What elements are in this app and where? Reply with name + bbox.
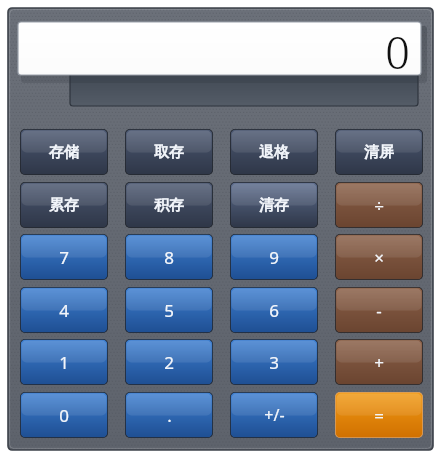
button[interactable]: 累存 [20,182,108,228]
staticText: 2 [164,351,174,374]
button[interactable]: 5 [125,287,213,333]
button[interactable]: 退格 [230,129,318,175]
staticText: . [167,404,172,427]
button[interactable]: 7 [20,234,108,280]
staticText: - [376,299,382,322]
staticText: 1 [59,351,69,374]
button[interactable]: - [335,287,423,333]
button[interactable]: 存储 [20,129,108,175]
staticText: 取存 [154,143,184,162]
staticText: 累存 [49,196,79,215]
button[interactable]: 积存 [125,182,213,228]
staticText: 5 [164,299,174,322]
button[interactable]: . [125,392,213,438]
staticText: 清存 [259,196,289,215]
button[interactable]: 取存 [125,129,213,175]
staticText: 9 [269,246,279,269]
staticText: 0 [59,404,69,427]
button[interactable]: 清存 [230,182,318,228]
staticText: 退格 [259,143,289,162]
button[interactable]: 0 [20,392,108,438]
button[interactable]: 清屏 [335,129,423,175]
staticText: 6 [269,299,279,322]
staticText: × [374,246,384,269]
button[interactable]: +/- [230,392,318,438]
staticText: 3 [269,351,279,374]
staticText: = [374,404,384,427]
button[interactable]: 3 [230,339,318,385]
button[interactable]: 2 [125,339,213,385]
staticText: +/- [264,404,285,426]
button[interactable]: 4 [20,287,108,333]
staticText: + [374,351,384,374]
button[interactable]: = [335,392,423,438]
staticText: 清屏 [364,143,394,162]
button[interactable]: 9 [230,234,318,280]
button[interactable]: + [335,339,423,385]
button[interactable]: 6 [230,287,318,333]
staticText: 存储 [49,143,79,162]
staticText: ÷ [374,194,384,217]
staticText: 积存 [154,196,184,215]
staticText: 4 [59,299,69,322]
staticText: 8 [164,246,174,269]
button[interactable]: 1 [20,339,108,385]
staticText: 7 [59,246,69,269]
staticText: 0 [385,22,410,75]
button[interactable]: 8 [125,234,213,280]
button[interactable]: ÷ [335,182,423,228]
button[interactable]: × [335,234,423,280]
